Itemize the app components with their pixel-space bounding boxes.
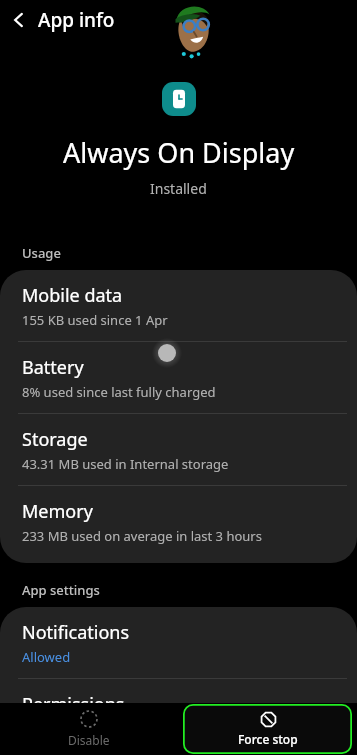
button[interactable]: Permissions (0, 679, 357, 729)
staticText: Always On Display (63, 134, 295, 171)
button[interactable]: Mobile data (0, 270, 357, 341)
staticText: Installed (150, 179, 207, 198)
staticText: Memory (22, 499, 93, 524)
staticText: Battery (22, 355, 84, 380)
staticText: Usage (22, 244, 61, 262)
staticText: Storage (22, 427, 88, 452)
staticText: 43.31 MB used in Internal storage (22, 455, 229, 473)
staticText: 155 KB used since 1 Apr (22, 311, 168, 329)
staticText: Disable (68, 732, 110, 748)
button[interactable]: Memory (0, 486, 357, 557)
button[interactable]: Storage (0, 414, 357, 485)
button[interactable]: Battery (0, 342, 357, 413)
staticText: Force stop (238, 731, 298, 747)
staticText: Mobile data (22, 283, 123, 308)
button[interactable]: Disable (0, 703, 178, 755)
staticText: 8% used since last fully charged (22, 383, 216, 401)
staticText: 233 MB used on average in last 3 hours (22, 527, 262, 545)
button[interactable]: Back (0, 2, 38, 38)
button[interactable]: Notifications (0, 607, 357, 678)
staticText: App info (38, 7, 115, 33)
button[interactable]: Force stop (183, 704, 352, 754)
staticText: Permissions (22, 692, 125, 717)
staticText: Allowed (22, 648, 71, 666)
staticText: Notifications (22, 620, 130, 645)
staticText: App settings (22, 581, 100, 599)
